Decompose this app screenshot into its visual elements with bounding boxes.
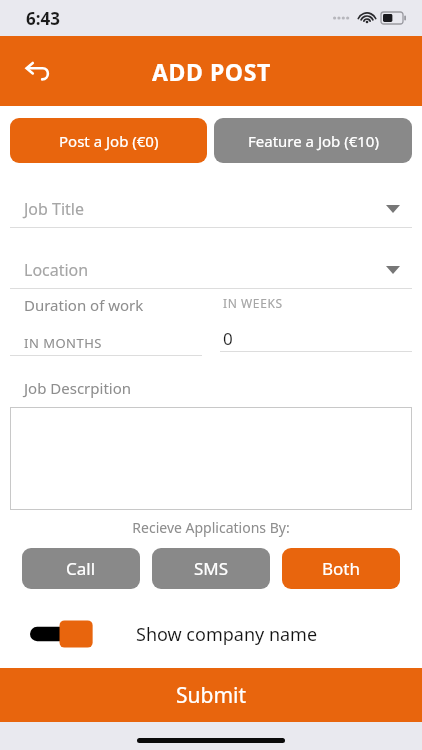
button[interactable]: Job Title: [10, 191, 412, 227]
staticText: Both: [322, 557, 360, 580]
button[interactable]: [10, 407, 412, 510]
staticText: IN WEEKS: [223, 295, 283, 311]
staticText: Submit: [176, 681, 247, 710]
button[interactable]: Both: [282, 548, 400, 589]
staticText: Recieve Applications By:: [0, 518, 422, 537]
button[interactable]: Back: [14, 47, 62, 95]
button[interactable]: SMS: [152, 548, 270, 589]
staticText: Feature a Job (€10): [248, 131, 379, 151]
button[interactable]: Post a Job (€0): [10, 118, 207, 163]
staticText: ADD POST: [152, 56, 271, 87]
button[interactable]: 0: [220, 325, 412, 351]
staticText: Location: [24, 259, 386, 281]
staticText: 6:43: [26, 7, 60, 30]
staticText: Post a Job (€0): [59, 131, 159, 151]
staticText: IN MONTHS: [24, 334, 102, 352]
staticText: Job Title: [24, 198, 386, 220]
staticText: Duration of work: [24, 295, 144, 315]
staticText: Job Descrpition: [24, 378, 132, 398]
staticText: SMS: [194, 557, 229, 580]
button[interactable]: Feature a Job (€10): [214, 118, 412, 163]
staticText: 0: [223, 327, 233, 350]
button[interactable]: Location: [10, 252, 412, 288]
staticText: Call: [66, 557, 96, 580]
staticText: Show company name: [136, 622, 318, 647]
button[interactable]: Show company name toggle: [30, 617, 102, 651]
button[interactable]: Call: [22, 548, 140, 589]
button[interactable]: Submit: [0, 668, 422, 722]
button[interactable]: IN MONTHS: [10, 331, 202, 355]
